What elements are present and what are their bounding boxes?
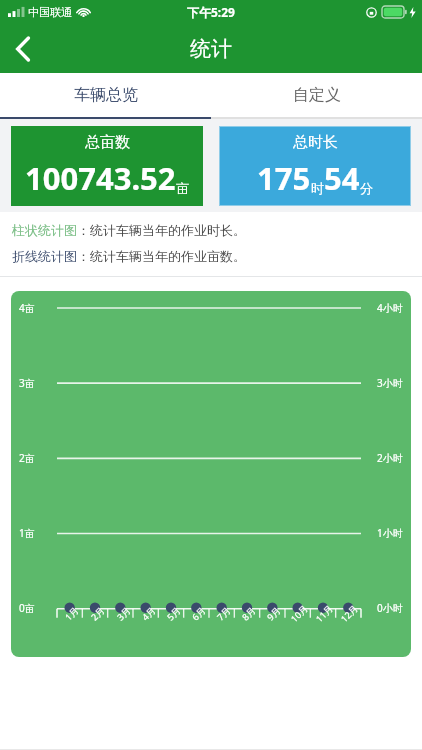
button[interactable]: 总时长 [219,126,411,206]
staticText: 0小时 [377,601,403,615]
staticText: 8月 [239,603,258,623]
staticText: 时 [311,180,324,196]
staticText: 亩 [176,180,189,196]
button[interactable]: 车辆总览 [0,73,211,117]
staticText: ：统计车辆当年的作业时长。 [77,222,246,238]
staticText: 3月 [114,603,133,623]
staticText: 下午5:29 [187,4,235,20]
staticText: 自定义 [293,85,341,105]
staticText: 1月 [62,603,81,623]
staticText: 1小时 [377,526,403,540]
staticText: 1亩 [19,526,35,540]
staticText: 0亩 [19,601,35,615]
staticText: 车辆总览 [74,85,138,105]
staticText: 中国联通 [28,5,72,19]
button[interactable]: 4亩 [11,291,411,657]
button[interactable]: 总亩数 [11,126,203,206]
staticText: 4月 [139,603,158,623]
staticText: 折线统计图 [12,248,77,264]
staticText: 2月 [88,603,107,623]
staticText: 柱状统计图 [12,222,77,238]
staticText: 100743.52 [25,157,176,199]
staticText: 统计 [190,36,232,62]
staticText: 175 [257,157,311,199]
staticText: 总时长 [293,133,338,152]
staticText: 4小时 [377,301,403,315]
button[interactable]: 自定义 [211,73,422,117]
staticText: 10月 [288,602,310,624]
staticText: 5月 [164,603,183,623]
staticText: 3亩 [19,376,35,390]
staticText: 4亩 [19,301,35,315]
staticText: 分 [360,180,373,196]
staticText: 12月 [338,602,360,624]
staticText: 7月 [214,603,233,623]
staticText: 54 [324,157,360,199]
staticText: 6月 [189,603,208,623]
staticText: 2小时 [377,451,403,465]
staticText: 总亩数 [85,133,130,152]
button[interactable]: Back [0,26,46,72]
staticText: ：统计车辆当年的作业亩数。 [77,248,246,264]
staticText: 2亩 [19,451,35,465]
staticText: 3小时 [377,376,403,390]
staticText: 9月 [264,603,283,623]
staticText: 11月 [313,602,335,624]
